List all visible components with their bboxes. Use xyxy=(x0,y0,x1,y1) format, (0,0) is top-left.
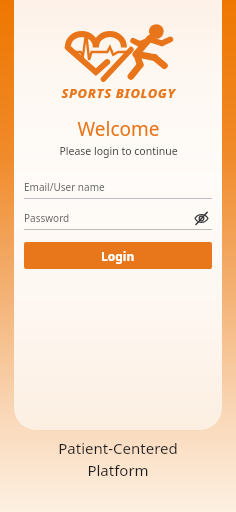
staticText: SPORTS BIOLOGY xyxy=(61,84,176,102)
button[interactable]: Login xyxy=(24,242,212,269)
staticText: Please login to continue xyxy=(59,144,178,158)
button[interactable]: Show password xyxy=(190,207,212,229)
staticText: Platform xyxy=(87,460,149,480)
staticText: Login xyxy=(101,248,135,264)
other: Sports Biology logo xyxy=(64,24,172,80)
staticText: Patient-Centered xyxy=(58,438,178,458)
button[interactable]: Email/User name xyxy=(24,176,212,199)
staticText: Password xyxy=(24,211,70,225)
button[interactable]: Password xyxy=(24,207,190,229)
staticText: Welcome xyxy=(77,116,160,142)
staticText: Email/User name xyxy=(24,180,105,194)
